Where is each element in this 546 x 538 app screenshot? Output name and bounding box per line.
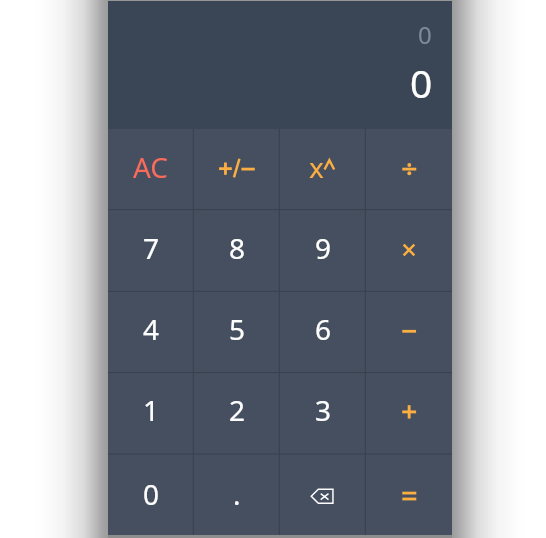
button[interactable]: 1: [108, 373, 194, 454]
button[interactable]: Divide: [366, 129, 452, 210]
button[interactable]: 9: [280, 210, 366, 292]
button[interactable]: 4: [108, 292, 194, 373]
button[interactable]: Multiply: [366, 210, 452, 292]
button[interactable]: Minus: [366, 292, 452, 373]
staticText: x: [309, 148, 324, 186]
button[interactable]: 2: [194, 373, 280, 454]
staticText: 5: [229, 310, 246, 348]
staticText: .: [233, 475, 241, 513]
button[interactable]: Equals: [366, 454, 452, 535]
staticText: 3: [315, 391, 332, 429]
staticText: 7: [143, 229, 160, 267]
button[interactable]: .: [194, 454, 280, 535]
staticText: 6: [315, 310, 332, 348]
button[interactable]: Plus or minus: [194, 129, 280, 210]
button[interactable]: 6: [280, 292, 366, 373]
staticText: 0: [143, 475, 160, 513]
button[interactable]: 0: [108, 454, 194, 535]
staticText: 2: [229, 391, 246, 429]
staticText: 0: [410, 56, 433, 109]
button[interactable]: Backspace: [280, 454, 366, 535]
button[interactable]: AC: [108, 129, 194, 210]
button[interactable]: 3: [280, 373, 366, 454]
button[interactable]: 7: [108, 210, 194, 292]
staticText: 1: [143, 391, 160, 429]
button[interactable]: 5: [194, 292, 280, 373]
staticText: 8: [229, 229, 246, 267]
button[interactable]: x to the power of y: [280, 129, 366, 210]
staticText: 9: [315, 229, 332, 267]
staticText: AC: [133, 148, 169, 186]
button[interactable]: Plus: [366, 373, 452, 454]
staticText: 4: [143, 310, 160, 348]
button[interactable]: 8: [194, 210, 280, 292]
staticText: 0: [418, 18, 432, 51]
